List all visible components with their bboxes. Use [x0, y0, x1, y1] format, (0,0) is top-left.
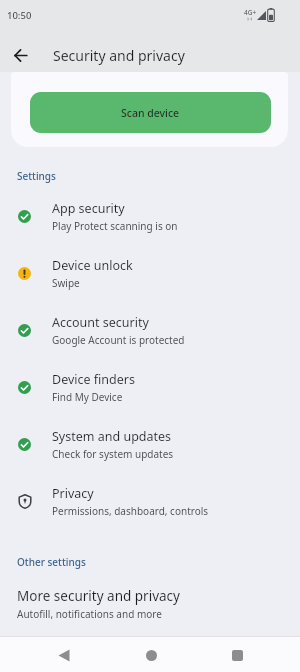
staticText: Privacy [52, 485, 94, 502]
staticText: Swipe [52, 276, 80, 290]
button[interactable]: App security [0, 188, 300, 245]
button[interactable]: Device finders [0, 359, 300, 416]
staticText: Other settings [17, 555, 86, 569]
button[interactable] [52, 643, 76, 667]
staticText: App security [52, 200, 125, 217]
button[interactable] [12, 47, 28, 63]
staticText: Permissions, dashboard, controls [52, 504, 209, 518]
staticText: Security and privacy [53, 46, 185, 65]
staticText: Google Account is protected [52, 333, 185, 347]
button[interactable]: Account security [0, 302, 300, 359]
staticText: 4G+ [244, 8, 257, 17]
staticText: Settings [17, 169, 56, 183]
staticText: Account security [52, 314, 149, 331]
staticText: More security and privacy [17, 587, 180, 605]
staticText: System and updates [52, 428, 172, 445]
staticText: Device finders [52, 371, 135, 388]
button[interactable] [225, 643, 249, 667]
staticText: Play Protect scanning is on [52, 219, 178, 233]
staticText: Autofill, notifications and more [17, 607, 162, 621]
staticText: Find My Device [52, 390, 123, 404]
button[interactable]: Privacy [0, 473, 300, 530]
staticText: Device unlock [52, 257, 133, 274]
button[interactable]: System and updates [0, 416, 300, 473]
button[interactable]: Scan device [30, 92, 271, 133]
button[interactable]: Device unlock [0, 245, 300, 302]
button[interactable]: More security and privacy [0, 575, 300, 632]
staticText: 10:50 [7, 9, 32, 22]
staticText: Check for system updates [52, 447, 174, 461]
staticText: Scan device [121, 106, 180, 120]
button[interactable] [139, 643, 163, 667]
